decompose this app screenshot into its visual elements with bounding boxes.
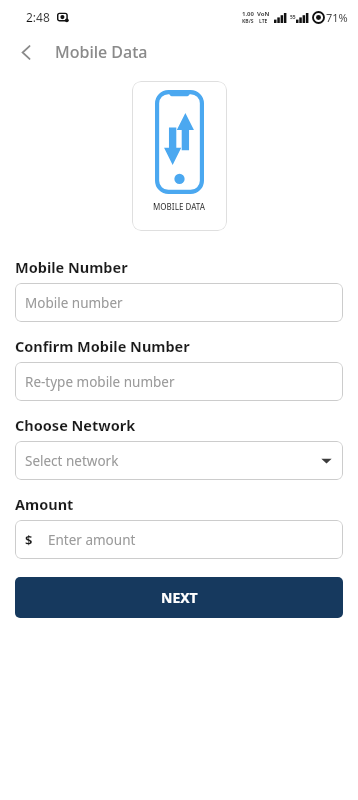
button[interactable]: NEXT xyxy=(15,577,343,618)
button[interactable]: Re-type mobile number xyxy=(15,362,343,401)
staticText: Mobile Number xyxy=(15,257,128,277)
staticText: NEXT xyxy=(161,588,198,607)
staticText: Re-type mobile number xyxy=(25,373,175,391)
staticText: Mobile number xyxy=(25,294,123,312)
staticText: KB/S xyxy=(242,18,254,25)
staticText: VoN xyxy=(257,10,270,18)
staticText: LTE xyxy=(259,18,268,25)
staticText: 2:48 xyxy=(26,9,50,25)
staticText: MOBILE DATA xyxy=(153,201,206,212)
button[interactable]: $ xyxy=(15,520,343,559)
staticText: 55 xyxy=(290,14,296,21)
button[interactable]: Mobile number xyxy=(15,283,343,322)
staticText: 71% xyxy=(326,10,348,25)
staticText: $ xyxy=(25,531,33,549)
staticText: Confirm Mobile Number xyxy=(15,336,190,356)
button[interactable]: Select network xyxy=(15,441,343,480)
staticText: Choose Network xyxy=(15,415,136,435)
staticText: Amount xyxy=(15,494,74,514)
staticText: 1.00 xyxy=(242,10,254,18)
staticText: Mobile Data xyxy=(55,41,148,63)
button[interactable]: Mobile Data xyxy=(132,81,227,231)
staticText: Enter amount xyxy=(48,531,136,549)
staticText: Select network xyxy=(25,452,119,470)
button[interactable]: Back xyxy=(10,36,42,68)
